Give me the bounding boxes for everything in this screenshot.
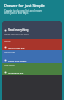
staticText: Read everything (8, 28, 29, 32)
staticText: Select any item to start (4, 33, 29, 36)
button[interactable]: Today (2, 39, 62, 50)
staticText: Shopping list (8, 71, 24, 74)
staticText: Work and study (8, 59, 27, 62)
button[interactable]: This week (2, 63, 62, 75)
staticText: Today (4, 40, 11, 43)
button[interactable]: Tomorrow (2, 50, 62, 63)
staticText: This week (4, 64, 15, 67)
staticText: Create to do any list and more with just… (4, 9, 43, 15)
staticText: Drawer for just Simple (4, 3, 45, 8)
staticText: Tomorrow (4, 51, 16, 54)
staticText: Add a new list (8, 46, 25, 49)
button[interactable]: Read everything (2, 21, 62, 39)
